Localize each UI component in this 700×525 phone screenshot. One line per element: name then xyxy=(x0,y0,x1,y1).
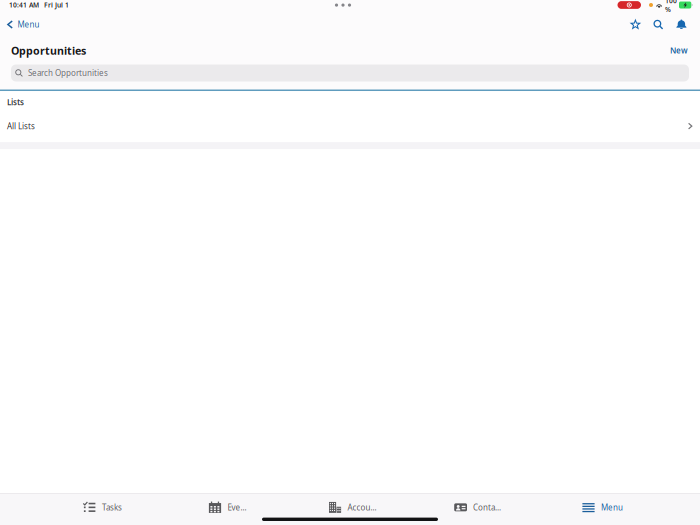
button[interactable]: Eve... xyxy=(165,498,290,517)
staticText: All Lists xyxy=(7,121,35,131)
staticText: Conta... xyxy=(473,502,501,513)
button[interactable]: Notifications xyxy=(670,14,693,34)
staticText: Tasks xyxy=(102,502,122,513)
button[interactable]: All Lists xyxy=(0,110,700,142)
button[interactable]: New xyxy=(664,41,694,60)
button[interactable]: Search xyxy=(647,14,670,34)
button[interactable]: Accou... xyxy=(290,498,415,517)
staticText: New xyxy=(670,45,688,56)
button[interactable]: Tasks xyxy=(40,498,165,517)
staticText: Lists xyxy=(7,97,24,107)
staticText: 100% xyxy=(665,0,677,14)
staticText: Fri Jul 1 xyxy=(44,1,69,9)
button[interactable]: Menu xyxy=(540,498,665,517)
button[interactable]: Favorites xyxy=(624,14,647,34)
staticText: Accou... xyxy=(347,502,376,513)
staticText: Opportunities xyxy=(11,43,86,58)
staticText: Eve... xyxy=(227,502,246,513)
staticText: Menu xyxy=(17,19,39,30)
button[interactable]: Menu xyxy=(0,14,47,34)
staticText: Search Opportunities xyxy=(28,68,108,78)
staticText: Menu xyxy=(601,502,623,513)
button[interactable]: Conta... xyxy=(415,498,540,517)
staticText: 10:41 AM xyxy=(9,1,39,9)
